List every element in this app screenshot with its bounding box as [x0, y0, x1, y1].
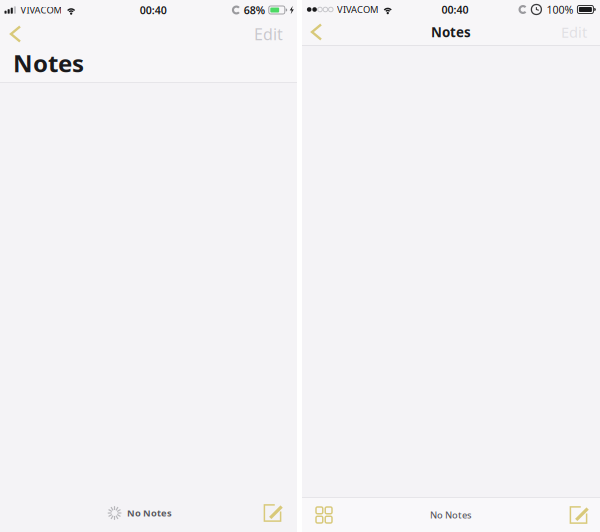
button[interactable]: Back — [0, 20, 32, 48]
staticText: No Notes — [127, 507, 172, 519]
staticText: VIVACOM — [337, 3, 378, 16]
staticText: Edit — [561, 22, 587, 42]
staticText: 00:40 — [140, 3, 167, 17]
button[interactable]: Edit — [240, 20, 297, 48]
button[interactable]: Compose — [257, 499, 288, 526]
button[interactable]: Back — [302, 19, 332, 45]
button[interactable]: Compose — [564, 501, 593, 528]
staticText: Notes — [13, 47, 84, 79]
staticText: 100% — [546, 2, 573, 17]
button[interactable]: Edit — [548, 19, 600, 45]
staticText: No Notes — [430, 509, 472, 521]
button[interactable]: Folders — [311, 503, 337, 527]
staticText: VIVACOM — [20, 4, 61, 16]
staticText: 00:40 — [441, 2, 468, 17]
staticText: 68% — [244, 3, 265, 17]
staticText: Notes — [431, 23, 471, 41]
staticText: Edit — [254, 23, 283, 45]
